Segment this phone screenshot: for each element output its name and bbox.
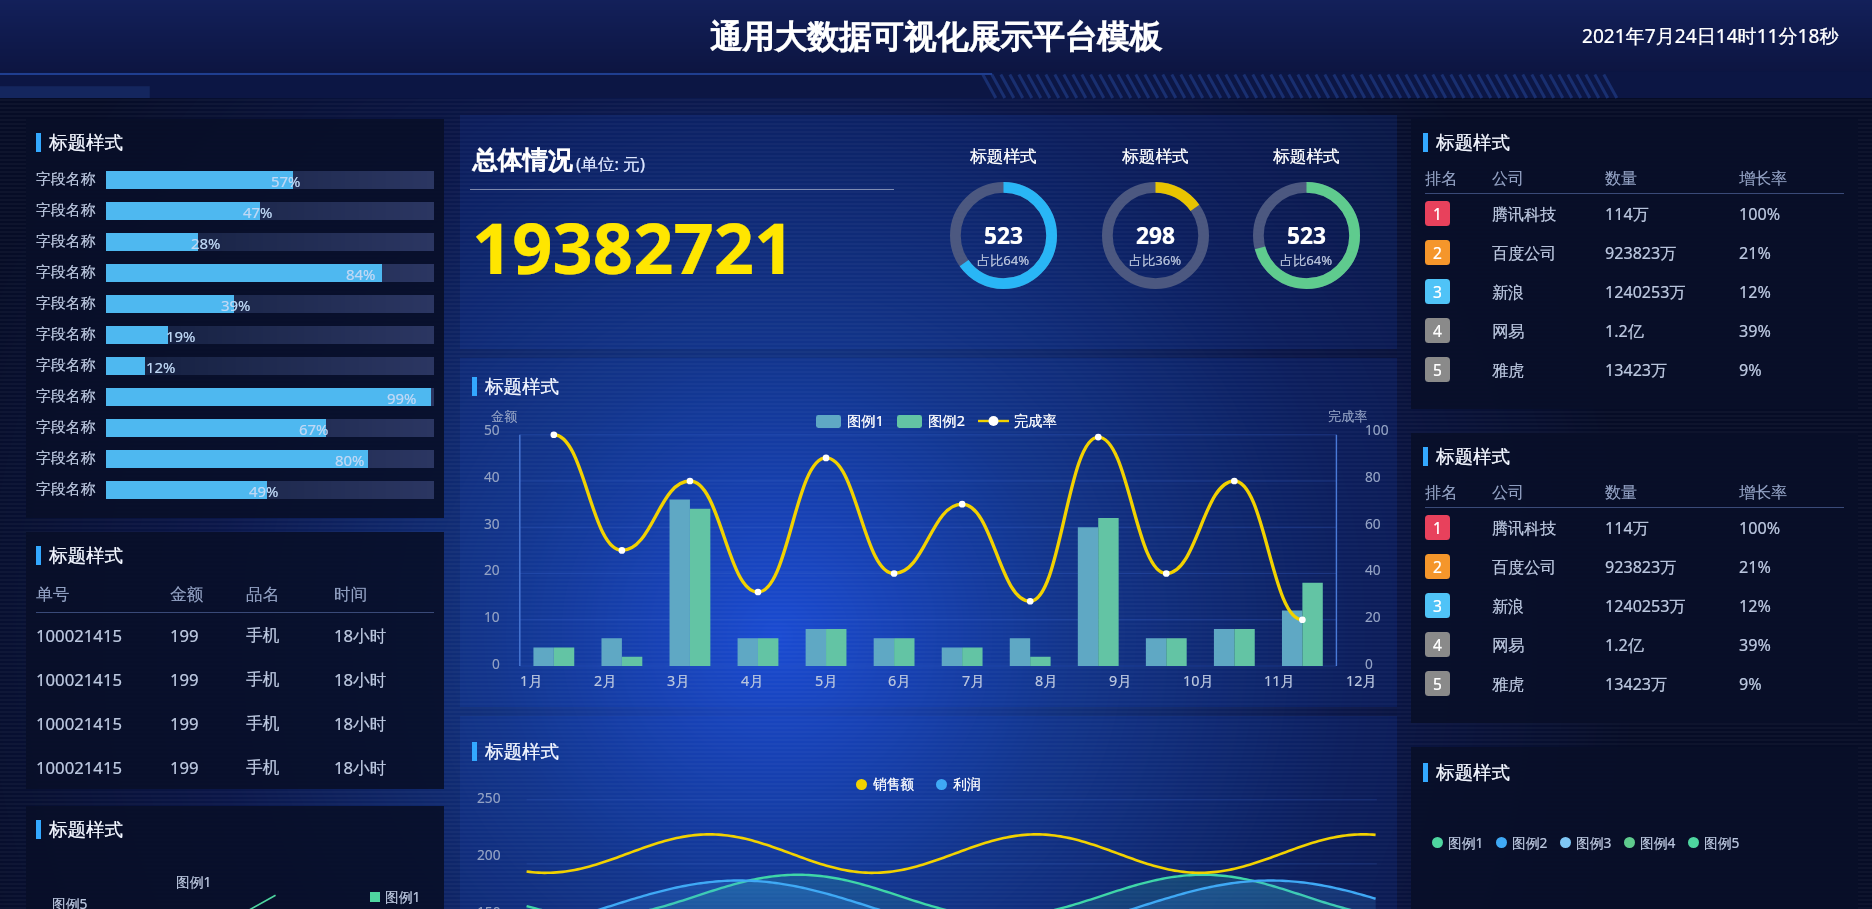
button[interactable]: 标题样式 [1098, 146, 1213, 325]
button[interactable]: 100021415 [36, 745, 434, 789]
button[interactable]: 1 [1425, 508, 1844, 547]
staticText: 49% [249, 481, 279, 499]
staticText: 20 [1365, 607, 1381, 626]
button[interactable]: 3 [1425, 272, 1844, 311]
button[interactable]: 字段名称 [36, 381, 434, 412]
button[interactable]: 字段名称 [36, 319, 434, 350]
staticText: 100021415 [36, 712, 170, 735]
staticText: 8月 [1035, 671, 1058, 691]
button[interactable]: 标题样式 [26, 532, 444, 789]
staticText: 标题样式 [485, 740, 559, 763]
staticText: 4 [1433, 320, 1442, 341]
button[interactable]: 字段名称 [36, 474, 434, 505]
staticText: 523 [984, 220, 1023, 251]
staticText: 7月 [962, 671, 985, 691]
staticText: 金额 [170, 584, 246, 605]
button[interactable]: 标题样式 [460, 716, 1397, 909]
staticText: 图例5 [1704, 833, 1740, 852]
button[interactable]: 5 [1425, 350, 1844, 389]
staticText: 84% [346, 264, 376, 282]
button[interactable]: 标题样式 [1411, 433, 1858, 723]
button[interactable]: 字段名称 [36, 350, 434, 381]
button[interactable]: 字段名称 [36, 257, 434, 288]
button[interactable]: 2 [1425, 547, 1844, 586]
staticText: 手机 [246, 625, 334, 646]
button[interactable]: 字段名称 [36, 226, 434, 257]
staticText: 39% [1739, 634, 1844, 656]
staticText: 923823万 [1605, 242, 1739, 264]
staticText: 199 [170, 712, 246, 735]
staticText: 百度公司 [1492, 557, 1605, 577]
staticText: 5月 [815, 671, 838, 691]
staticText: 12% [1739, 595, 1844, 617]
staticText: 手机 [246, 669, 334, 690]
staticText: 排名 [1425, 482, 1492, 502]
button[interactable]: 标题样式 [946, 146, 1061, 325]
button[interactable]: 字段名称 [36, 195, 434, 226]
staticText: 占比64% [977, 251, 1030, 269]
button[interactable]: 2 [1425, 233, 1844, 272]
button[interactable]: 5 [1425, 664, 1844, 703]
staticText: 雅虎 [1492, 674, 1605, 694]
button[interactable]: 标题样式 [26, 119, 444, 518]
staticText: 字段名称 [36, 170, 96, 189]
staticText: 图例1 [385, 887, 421, 906]
staticText: 2021年7月24日14时11分18秒 [1582, 23, 1839, 49]
staticText: 标题样式 [1436, 761, 1510, 784]
button[interactable]: 100021415 [36, 613, 434, 657]
staticText: 图例3 [1576, 833, 1612, 852]
staticText: 公司 [1492, 482, 1605, 502]
staticText: 0 [492, 654, 500, 673]
staticText: 字段名称 [36, 263, 96, 282]
staticText: 腾讯科技 [1492, 204, 1605, 224]
staticText: 12% [146, 357, 176, 375]
button[interactable]: 字段名称 [36, 164, 434, 195]
button[interactable]: 标题样式 [1249, 146, 1364, 325]
staticText: 11月 [1264, 671, 1295, 691]
button[interactable]: 字段名称 [36, 412, 434, 443]
button[interactable]: 1 [1425, 194, 1844, 233]
staticText: 标题样式 [485, 375, 559, 398]
button[interactable]: 100021415 [36, 657, 434, 701]
staticText: 114万 [1605, 517, 1739, 539]
staticText: 18小时 [334, 712, 434, 735]
staticText: 总体情况 [472, 145, 573, 177]
button[interactable]: 字段名称 [36, 443, 434, 474]
staticText: 80 [1365, 467, 1381, 486]
staticText: 字段名称 [36, 325, 96, 344]
staticText: 标题样式 [1273, 146, 1340, 167]
button[interactable]: 100021415 [36, 701, 434, 745]
button[interactable]: 标题样式 [1411, 119, 1858, 409]
staticText: 字段名称 [36, 449, 96, 468]
button[interactable]: 3 [1425, 586, 1844, 625]
staticText: 40 [484, 467, 500, 486]
staticText: 1.2亿 [1605, 634, 1739, 656]
staticText: 标题样式 [1122, 146, 1189, 167]
staticText: 6月 [888, 671, 911, 691]
staticText: 新浪 [1492, 596, 1605, 616]
staticText: 2月 [594, 671, 617, 691]
staticText: 100% [1739, 517, 1844, 539]
button[interactable]: 标题样式 [460, 358, 1397, 707]
staticText: 3 [1433, 595, 1442, 616]
staticText: 80% [335, 450, 365, 468]
staticText: 9% [1739, 673, 1844, 695]
staticText: 0 [1365, 654, 1373, 673]
staticText: 数量 [1605, 482, 1739, 502]
button[interactable]: 标题样式 [1411, 747, 1858, 909]
staticText: 图例4 [1640, 833, 1676, 852]
button[interactable]: 4 [1425, 311, 1844, 350]
staticText: 通用大数据可视化展示平台模板 [710, 17, 1162, 58]
staticText: 199 [170, 756, 246, 779]
staticText: 1月 [520, 671, 543, 691]
staticText: 图例1 [176, 872, 212, 891]
button[interactable]: 字段名称 [36, 288, 434, 319]
staticText: 手机 [246, 713, 334, 734]
staticText: 13423万 [1605, 673, 1739, 695]
staticText: 47% [243, 202, 273, 220]
staticText: 10 [484, 607, 500, 626]
button[interactable]: 4 [1425, 625, 1844, 664]
staticText: 100% [1739, 203, 1844, 225]
staticText: 单号 [36, 584, 170, 605]
button[interactable]: 标题样式 [26, 806, 444, 909]
